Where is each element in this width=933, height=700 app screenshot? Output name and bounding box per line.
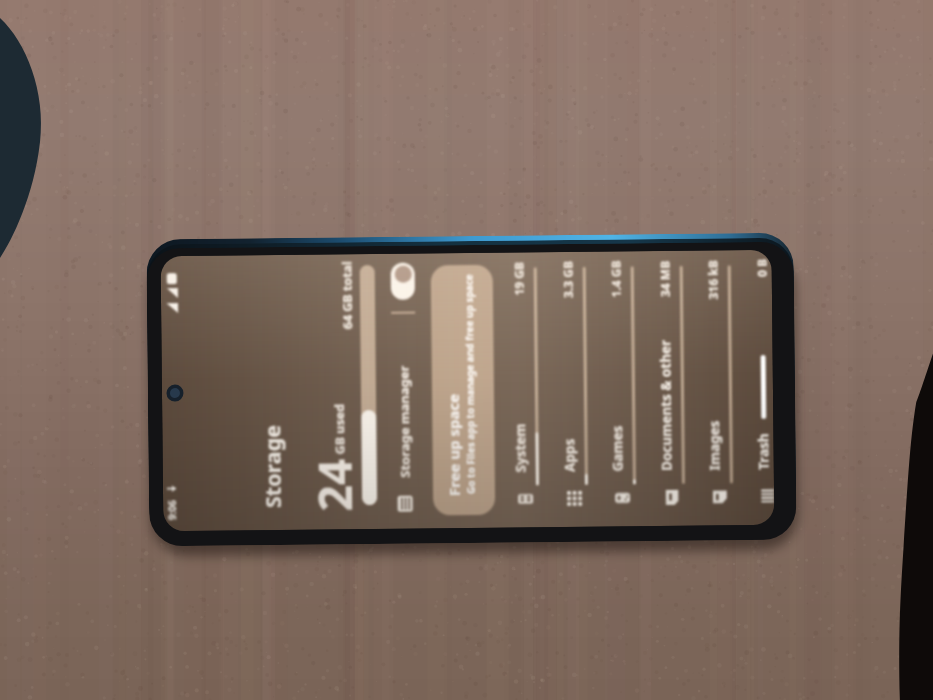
staticText: 34 MB	[657, 260, 673, 297]
staticText: 9:06	[165, 500, 179, 520]
staticText: GB used	[331, 403, 349, 454]
staticText: 64 GB total	[339, 260, 356, 329]
button[interactable]: Storage manager	[380, 253, 427, 529]
staticText: Documents & other	[656, 339, 676, 471]
staticText: Apps	[560, 438, 579, 472]
button[interactable]: Trash	[752, 250, 774, 525]
staticText: System	[511, 422, 530, 473]
button[interactable]: Free up space	[431, 265, 495, 515]
button[interactable]: Apps	[558, 252, 609, 527]
staticText: Free up space	[443, 393, 464, 496]
button[interactable]: Images	[703, 250, 754, 526]
staticText: 1.4 GB	[608, 260, 624, 298]
staticText: 0 B	[754, 259, 770, 277]
button[interactable]: Storage manager toggle	[391, 263, 415, 300]
staticText: 3.3 GB	[560, 261, 576, 298]
staticText: Trash	[754, 433, 773, 470]
staticText: Images	[705, 420, 724, 471]
button[interactable]: Games	[606, 251, 657, 527]
button[interactable]: System	[509, 252, 560, 528]
staticText: Games	[608, 425, 627, 472]
button[interactable]: Documents & other	[655, 251, 706, 526]
staticText: 19 GB	[511, 261, 527, 296]
staticText: Storage	[257, 424, 287, 508]
staticText: Go to Files app to manage and free up sp…	[462, 274, 478, 494]
staticText: 24	[303, 458, 353, 512]
staticText: Storage manager	[395, 365, 414, 478]
staticText: 316 kB	[705, 259, 721, 300]
